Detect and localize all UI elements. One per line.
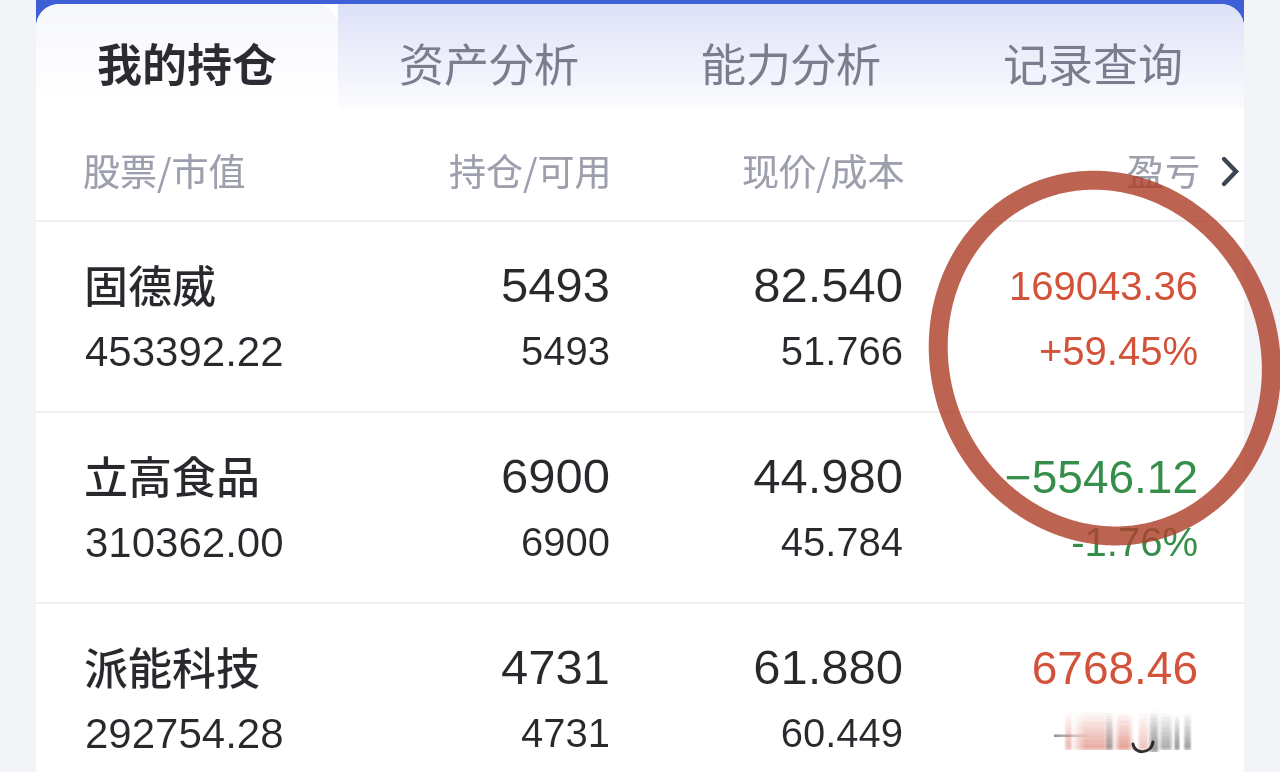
staticText: 股票/市值: [83, 143, 246, 197]
staticText: 310362.00: [85, 519, 284, 566]
button[interactable]: 能力分析: [640, 4, 942, 109]
staticText: −5546.12: [1004, 451, 1198, 502]
staticText: -1.76%: [1071, 520, 1198, 565]
button[interactable]: 派能科技: [36, 604, 1244, 772]
staticText: 资产分析: [399, 30, 580, 95]
button[interactable]: 资产分析: [338, 4, 640, 109]
staticText: 盈亏: [1127, 143, 1201, 197]
button[interactable]: 盈亏: [1096, 109, 1244, 220]
staticText: 45.784: [780, 520, 903, 565]
staticText: 51.766: [780, 329, 903, 374]
staticText: 现价/成本: [742, 143, 905, 197]
staticText: 5493: [521, 329, 610, 374]
other: Sort by profit and loss: [1222, 157, 1238, 186]
button[interactable]: 立高食品: [36, 413, 1244, 602]
staticText: 持仓/可用: [449, 143, 612, 197]
staticText: 60.449: [780, 711, 903, 756]
button[interactable]: 固德威: [36, 222, 1244, 411]
staticText: 453392.22: [85, 328, 284, 375]
staticText: 6900: [521, 520, 610, 565]
staticText: 立高食品: [84, 443, 260, 507]
button[interactable]: 记录查询: [942, 4, 1244, 109]
button[interactable]: 我的持仓: [36, 4, 338, 109]
staticText: 82.540: [753, 258, 903, 313]
staticText: 6768.46: [1031, 642, 1198, 693]
staticText: 4731: [500, 640, 610, 695]
staticText: 169043.36: [1008, 264, 1198, 309]
staticText: 61.880: [753, 640, 903, 695]
staticText: 44.980: [753, 449, 903, 504]
staticText: 292754.28: [85, 710, 284, 757]
staticText: 固德威: [84, 252, 216, 316]
staticText: 记录查询: [1003, 30, 1184, 95]
staticText: 能力分析: [701, 30, 882, 95]
staticText: 4731: [521, 711, 610, 756]
staticText: 6900: [500, 449, 610, 504]
staticText: 派能科技: [84, 634, 260, 698]
staticText: +59.45%: [1038, 329, 1198, 374]
staticText: 5493: [500, 258, 610, 313]
staticText: 我的持仓: [97, 30, 278, 95]
